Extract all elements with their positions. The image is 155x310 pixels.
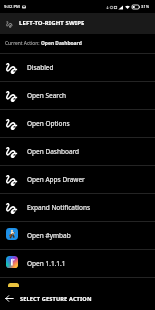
staticText: SELECT GESTURE ACTION [20, 295, 92, 303]
staticText: 31% [141, 4, 150, 10]
staticText: Open Dashboard [27, 147, 80, 156]
staticText: Open Options [27, 119, 70, 128]
button[interactable]: Open Apps Drawer [0, 166, 155, 193]
staticText: Disabled [27, 63, 54, 72]
button[interactable]: Open #ymbab [0, 222, 155, 249]
staticText: Open #ymbab [27, 231, 71, 240]
staticText: Open 1.1.1.1 [27, 259, 66, 268]
staticText: Open Search [27, 91, 67, 100]
button[interactable]: Back [4, 293, 15, 304]
button[interactable]: Scroll to top [8, 283, 19, 288]
staticText: Current Action: [5, 40, 41, 47]
button[interactable]: Gesture [4, 19, 14, 29]
button[interactable]: Open Search [0, 82, 155, 109]
button[interactable]: Open 1.1.1.1 [0, 250, 155, 277]
staticText: LEFT-TO-RIGHT SWIPE [19, 19, 85, 27]
staticText: 9:32 PM [4, 4, 20, 10]
button[interactable]: Disabled [0, 54, 155, 81]
staticText: Expand Notifications [27, 203, 91, 212]
staticText: Open Dashboard [41, 40, 82, 47]
button[interactable]: Expand Notifications [0, 194, 155, 221]
button[interactable]: Open Dashboard [0, 138, 155, 165]
staticText: Open Apps Drawer [27, 175, 85, 184]
button[interactable]: Open Options [0, 110, 155, 137]
